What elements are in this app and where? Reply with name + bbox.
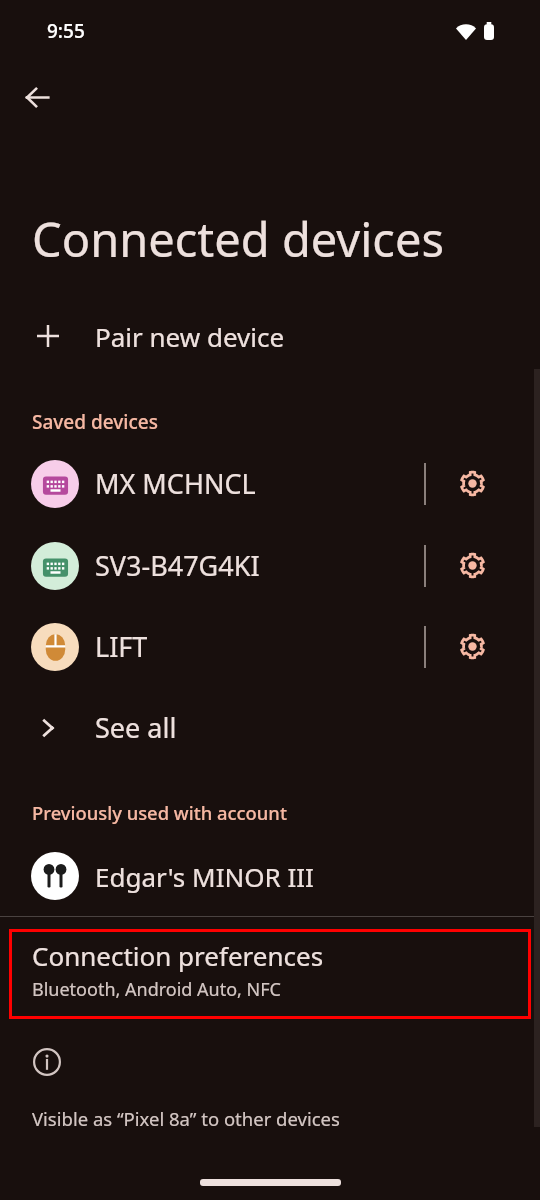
staticText: Previously used with account (32, 800, 287, 825)
button[interactable]: SV3-B47G4KI (0, 525, 416, 606)
staticText: 9:55 (47, 18, 85, 44)
button[interactable]: See all (0, 687, 540, 768)
button[interactable]: Connection preferences (9, 929, 531, 1019)
staticText: SV3-B47G4KI (95, 547, 260, 584)
button[interactable]: LIFT (0, 606, 416, 687)
staticText: LIFT (95, 628, 148, 665)
staticText: Visible as “Pixel 8a” to other devices (32, 1106, 340, 1131)
button[interactable]: Device settings (426, 606, 540, 687)
button[interactable]: Back (13, 73, 61, 121)
button[interactable]: Device settings (426, 443, 540, 524)
staticText: Pair new device (95, 319, 285, 354)
staticText: Edgar's MINOR III (95, 859, 314, 894)
staticText: Connected devices (32, 207, 444, 271)
button[interactable]: Pair new device (0, 308, 540, 364)
button[interactable]: Edgar's MINOR III (0, 836, 540, 916)
staticText: See all (95, 709, 177, 746)
staticText: Connection preferences (32, 938, 324, 973)
button[interactable]: MX MCHNCL (0, 443, 416, 524)
staticText: MX MCHNCL (95, 465, 256, 502)
staticText: Bluetooth, Android Auto, NFC (32, 977, 281, 1002)
button[interactable]: Device settings (426, 525, 540, 606)
staticText: Saved devices (32, 409, 158, 435)
